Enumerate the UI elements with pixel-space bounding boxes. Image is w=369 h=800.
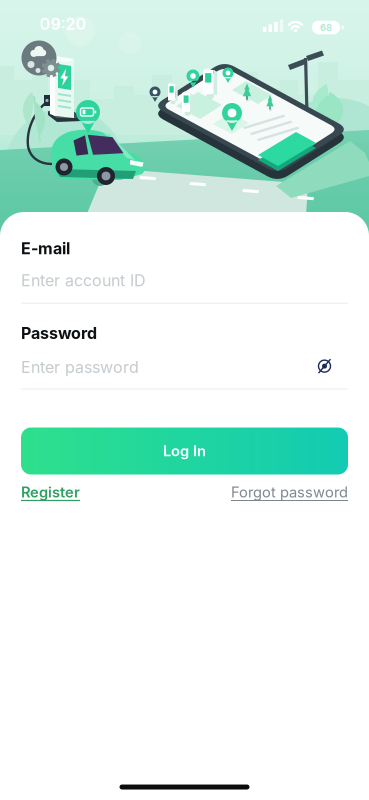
staticText: Forgot password	[231, 483, 348, 501]
button[interactable]: Register	[21, 483, 80, 501]
staticText: Enter account ID	[21, 271, 146, 290]
button[interactable]: Forgot password	[231, 483, 348, 501]
staticText: 68	[320, 22, 332, 33]
button[interactable]: Show password	[312, 343, 348, 375]
staticText: Password	[21, 324, 97, 343]
staticText: Register	[21, 483, 80, 501]
button[interactable]: Log In	[21, 427, 348, 474]
button[interactable]: Enter account ID	[21, 258, 348, 304]
staticText: E-mail	[21, 239, 70, 258]
button[interactable]: Enter password	[21, 343, 312, 376]
staticText: Enter password	[21, 358, 139, 376]
staticText: 09:20	[39, 15, 86, 33]
staticText: Log In	[163, 442, 206, 460]
